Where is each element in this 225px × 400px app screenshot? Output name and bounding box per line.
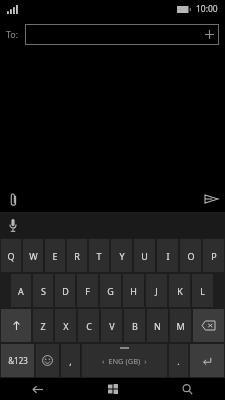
button[interactable]: O (180, 239, 201, 272)
button[interactable]: Send (197, 186, 225, 212)
staticText: , (69, 355, 72, 367)
button[interactable]: Attach (0, 186, 26, 212)
staticText: Q (7, 250, 15, 262)
staticText: ‹ ENG (GB) › (102, 356, 147, 366)
button[interactable]: B (124, 309, 145, 342)
staticText: H (130, 285, 137, 297)
staticText: V (109, 320, 115, 332)
button[interactable]: K (169, 274, 190, 307)
staticText: B (132, 320, 138, 332)
staticText: L (200, 285, 205, 297)
button[interactable]: Shift (1, 309, 31, 342)
staticText: J (155, 285, 158, 297)
button[interactable]: &123 (1, 344, 34, 377)
staticText: O (187, 250, 195, 262)
button[interactable]: E (45, 239, 65, 272)
button[interactable]: H (123, 274, 144, 307)
staticText: &123 (8, 355, 28, 366)
button[interactable]: P (203, 239, 224, 272)
staticText: M (176, 320, 185, 332)
button[interactable]: Back (0, 378, 75, 400)
other: Add recipient (205, 30, 214, 39)
staticText: D (62, 285, 69, 297)
button[interactable]: N (147, 309, 168, 342)
other: Enter (202, 356, 212, 366)
staticText: Y (119, 250, 125, 262)
button[interactable]: Y (111, 239, 132, 272)
button[interactable]: Search (150, 378, 225, 400)
staticText: E (52, 250, 58, 262)
button[interactable]: Add recipient (25, 24, 219, 45)
staticText: F (85, 285, 90, 297)
staticText: To: (6, 28, 19, 40)
button[interactable]: X (55, 309, 76, 342)
button[interactable]: Emoji (36, 344, 59, 377)
staticText: W (29, 250, 38, 262)
button[interactable]: C (78, 309, 99, 342)
button[interactable]: L (192, 274, 213, 307)
button[interactable]: Enter (190, 344, 224, 377)
button[interactable]: V (101, 309, 122, 342)
button[interactable]: Q (1, 239, 21, 272)
button[interactable]: W (23, 239, 43, 272)
staticText: K (177, 285, 183, 297)
button[interactable]: T (89, 239, 109, 272)
button[interactable]: F (77, 274, 98, 307)
staticText: U (141, 250, 148, 262)
button[interactable]: Voice input (0, 212, 26, 238)
button[interactable]: G (100, 274, 121, 307)
other: Emoji (42, 355, 53, 366)
staticText: T (96, 250, 102, 262)
staticText: Z (40, 320, 46, 332)
button[interactable]: A (11, 274, 31, 307)
other: Backspace (202, 321, 215, 330)
staticText: N (154, 320, 161, 332)
staticText: R (74, 250, 80, 262)
staticText: . (177, 355, 180, 367)
button[interactable]: D (55, 274, 75, 307)
button[interactable]: . (169, 344, 188, 377)
button[interactable]: J (146, 274, 167, 307)
staticText: 10:00 (196, 3, 218, 15)
button[interactable]: Backspace (193, 309, 224, 342)
other: Shift (12, 321, 21, 330)
button[interactable]: M (170, 309, 191, 342)
staticText: X (63, 320, 69, 332)
button[interactable]: U (134, 239, 155, 272)
button[interactable]: Z (33, 309, 53, 342)
button[interactable]: I (157, 239, 178, 272)
staticText: P (211, 250, 217, 262)
button[interactable]: , (61, 344, 80, 377)
staticText: G (107, 285, 114, 297)
staticText: C (86, 320, 92, 332)
button[interactable]: Start (75, 378, 150, 400)
button[interactable]: ‹ ENG (GB) › (82, 344, 167, 377)
button[interactable]: S (33, 274, 53, 307)
staticText: S (41, 285, 46, 297)
staticText: I (166, 250, 170, 262)
button[interactable]: R (67, 239, 87, 272)
staticText: A (18, 285, 24, 297)
